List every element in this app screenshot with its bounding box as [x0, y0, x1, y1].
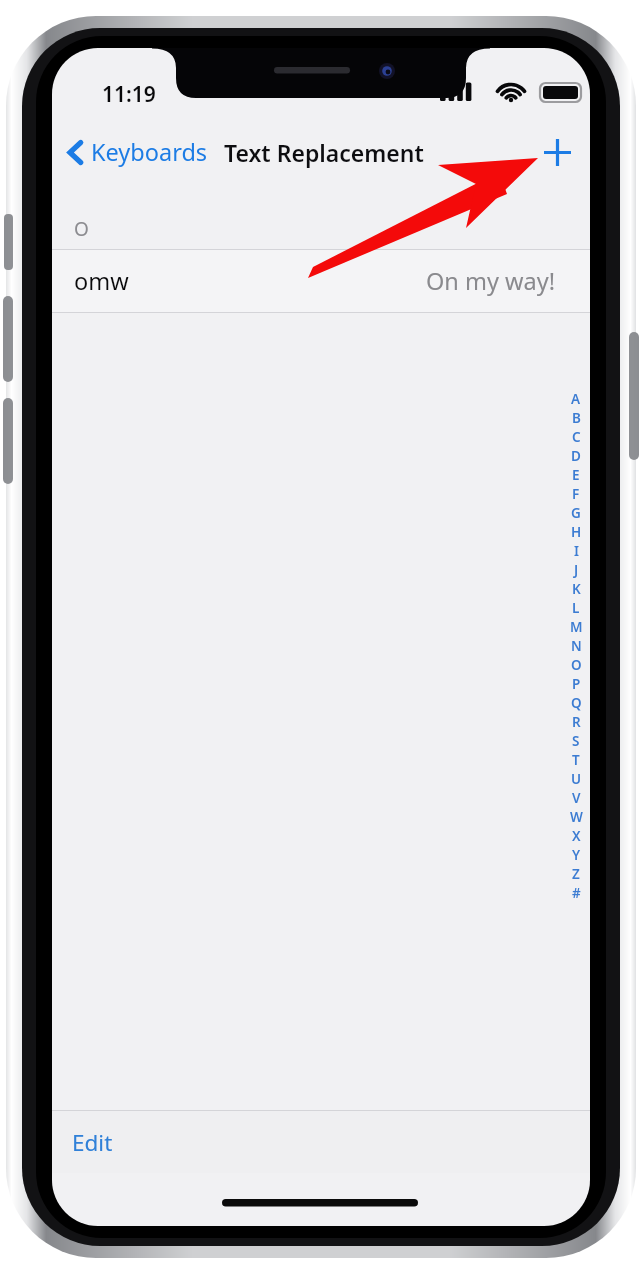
- button[interactable]: Keyboards: [60, 127, 216, 177]
- staticText: V: [572, 789, 581, 807]
- button[interactable]: Add text replacement: [530, 125, 584, 179]
- staticText: F: [572, 485, 580, 503]
- staticText: Z: [572, 865, 580, 883]
- staticText: G: [571, 504, 581, 522]
- staticText: Q: [571, 694, 582, 712]
- staticText: I: [574, 542, 579, 560]
- staticText: X: [572, 827, 581, 845]
- staticText: M: [570, 618, 583, 636]
- staticText: Edit: [72, 1127, 113, 1158]
- staticText: W: [570, 808, 583, 826]
- staticText: K: [572, 580, 581, 598]
- staticText: 11:19: [102, 80, 156, 109]
- staticText: T: [572, 751, 580, 769]
- staticText: C: [572, 428, 581, 446]
- staticText: Keyboards: [91, 136, 208, 168]
- button[interactable]: omw: [52, 250, 590, 312]
- staticText: omw: [74, 265, 129, 297]
- staticText: U: [571, 770, 582, 788]
- staticText: R: [572, 713, 581, 731]
- staticText: O: [74, 216, 89, 242]
- staticText: B: [572, 409, 581, 427]
- staticText: On my way!: [426, 265, 556, 297]
- staticText: J: [574, 561, 579, 579]
- staticText: D: [571, 447, 581, 465]
- staticText: O: [571, 656, 582, 674]
- staticText: S: [572, 732, 580, 750]
- staticText: Text Replacement: [224, 137, 424, 168]
- button[interactable]: Alphabet index: [565, 389, 587, 902]
- staticText: E: [572, 466, 580, 484]
- staticText: A: [571, 390, 581, 408]
- button[interactable]: Edit: [60, 1116, 125, 1168]
- staticText: H: [571, 523, 582, 541]
- staticText: L: [572, 599, 580, 617]
- staticText: N: [571, 637, 582, 655]
- staticText: #: [572, 884, 581, 902]
- staticText: P: [572, 675, 581, 693]
- staticText: Y: [572, 846, 581, 864]
